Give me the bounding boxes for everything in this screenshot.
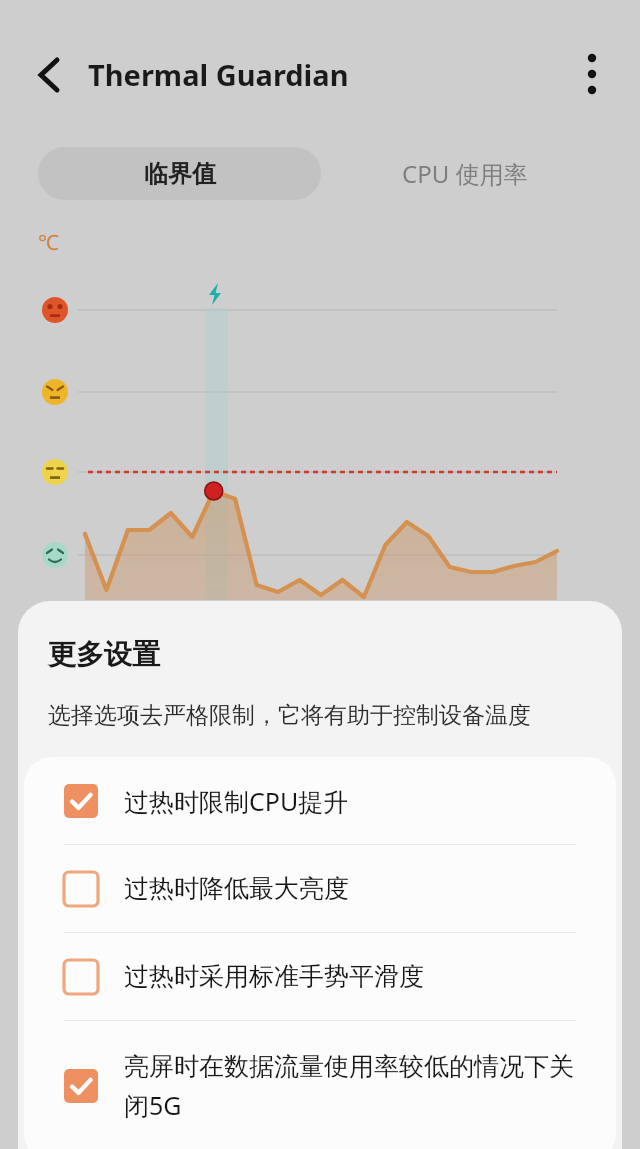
button[interactable]: CPU 使用率	[330, 147, 600, 200]
staticText: 临界值	[144, 159, 216, 189]
staticText: ℃	[38, 228, 59, 257]
staticText: 亮屏时在数据流量使用率较低的情况下关闭5G	[124, 1051, 586, 1122]
button[interactable]: 过热时限制CPU提升	[24, 757, 616, 844]
button[interactable]: 临界值	[38, 147, 321, 200]
button[interactable]: 过热时降低最大亮度	[24, 845, 616, 932]
button[interactable]: More options	[566, 48, 618, 100]
staticText: 过热时降低最大亮度	[124, 873, 349, 904]
staticText: 选择选项去严格限制，它将有助于控制设备温度	[48, 701, 531, 730]
button[interactable]: 亮屏时在数据流量使用率较低的情况下关闭5G	[24, 1021, 616, 1149]
staticText: 更多设置	[48, 637, 160, 672]
staticText: 过热时限制CPU提升	[124, 784, 349, 818]
button[interactable]: Back	[22, 48, 76, 102]
staticText: Thermal Guardian	[88, 55, 349, 94]
button[interactable]: 过热时采用标准手势平滑度	[24, 933, 616, 1020]
staticText: 过热时采用标准手势平滑度	[124, 961, 424, 992]
staticText: CPU 使用率	[402, 157, 528, 190]
